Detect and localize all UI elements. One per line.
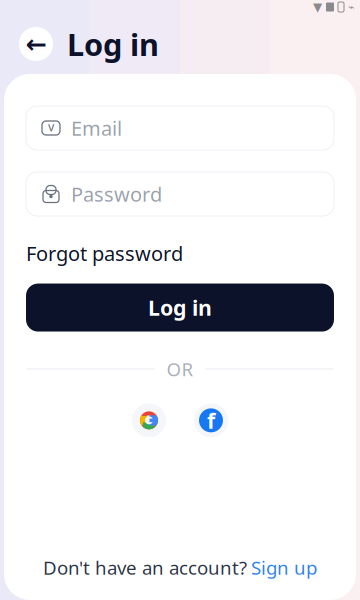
staticText: ⌁	[348, 1, 354, 13]
button[interactable]: Sign in with Facebook	[194, 403, 228, 437]
button[interactable]: Don't have an account?	[43, 555, 317, 580]
staticText: Email	[71, 115, 122, 141]
staticText: ←	[25, 30, 46, 58]
staticText: ▼	[313, 0, 322, 14]
button[interactable]: Sign in with Google	[132, 403, 166, 437]
staticText: Forgot password	[26, 240, 183, 267]
staticText: Sign up	[251, 555, 317, 580]
staticText: Log in	[67, 24, 159, 64]
button[interactable]: Log in	[26, 284, 334, 332]
staticText: f	[207, 406, 215, 434]
staticText: Don't have an account?	[43, 555, 247, 580]
staticText: OR	[166, 357, 193, 381]
staticText: Log in	[148, 293, 212, 322]
button[interactable]: Forgot password	[26, 240, 183, 267]
staticText: Password	[71, 181, 162, 207]
staticText: v	[48, 118, 54, 134]
button[interactable]: Back	[19, 27, 53, 61]
